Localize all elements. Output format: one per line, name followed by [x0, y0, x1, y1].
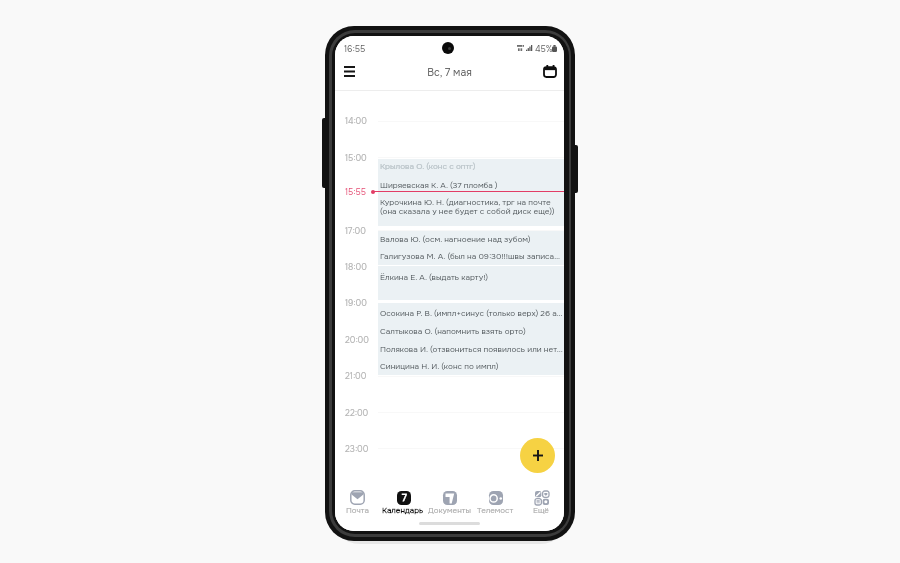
- button[interactable]: [378, 303, 564, 321]
- staticText: Полякова И. (отзвониться появилось или н…: [380, 344, 563, 354]
- button[interactable]: [378, 357, 564, 375]
- button[interactable]: [378, 177, 564, 194]
- staticText: 22:00: [345, 408, 369, 419]
- staticText: Вс, 7 мая: [335, 66, 564, 79]
- button[interactable]: Pick date: [538, 60, 562, 82]
- button[interactable]: [378, 159, 564, 177]
- staticText: 20:00: [345, 335, 369, 346]
- button[interactable]: [378, 266, 564, 300]
- staticText: 15:00: [345, 153, 367, 164]
- staticText: Ещё: [533, 505, 549, 515]
- button[interactable]: Create event: [520, 438, 555, 473]
- staticText: Телемост: [477, 505, 514, 515]
- staticText: Салтыкова О. (напомнить взять орто): [380, 326, 563, 336]
- staticText: Осокина Р. В. (импл+синус (только верх) …: [380, 308, 563, 318]
- staticText: 16:55: [344, 44, 366, 55]
- button[interactable]: [378, 193, 564, 226]
- button[interactable]: Телемост: [472, 490, 518, 523]
- staticText: Курочкина Ю. Н. (диагностика, трг на поч…: [380, 197, 563, 216]
- staticText: Ширяевская К. А. (37 пломба ): [380, 180, 563, 190]
- staticText: 17:00: [345, 226, 366, 237]
- button[interactable]: Open menu: [338, 60, 361, 82]
- button[interactable]: Ещё: [518, 490, 564, 523]
- staticText: 18:00: [345, 262, 367, 273]
- button[interactable]: Документы: [426, 490, 472, 523]
- staticText: Валова Ю. (осм. нагноение над зубом): [380, 234, 563, 244]
- staticText: Галигузова М. А. (был на 09:30!!!швы зап…: [380, 251, 563, 261]
- button[interactable]: Почта: [335, 490, 380, 523]
- staticText: 15:55: [345, 187, 366, 198]
- staticText: Документы: [428, 505, 471, 515]
- staticText: Крылова О. (конс с оптг): [380, 161, 563, 171]
- staticText: Почта: [346, 505, 369, 515]
- button[interactable]: [378, 231, 564, 248]
- staticText: 23:00: [345, 444, 369, 455]
- staticText: 7: [402, 492, 407, 504]
- button[interactable]: [378, 339, 564, 357]
- staticText: Синицина Н. И. (конс по импл): [380, 361, 563, 371]
- button[interactable]: 7: [380, 490, 426, 523]
- button[interactable]: [378, 321, 564, 339]
- staticText: 14:00: [345, 116, 367, 127]
- staticText: 19:00: [345, 298, 367, 309]
- staticText: Ёлкина Е. А. (выдать карту!): [380, 272, 563, 282]
- staticText: 45%: [535, 44, 553, 55]
- staticText: Календарь: [382, 505, 424, 515]
- staticText: 21:00: [345, 371, 367, 382]
- button[interactable]: [378, 248, 564, 265]
